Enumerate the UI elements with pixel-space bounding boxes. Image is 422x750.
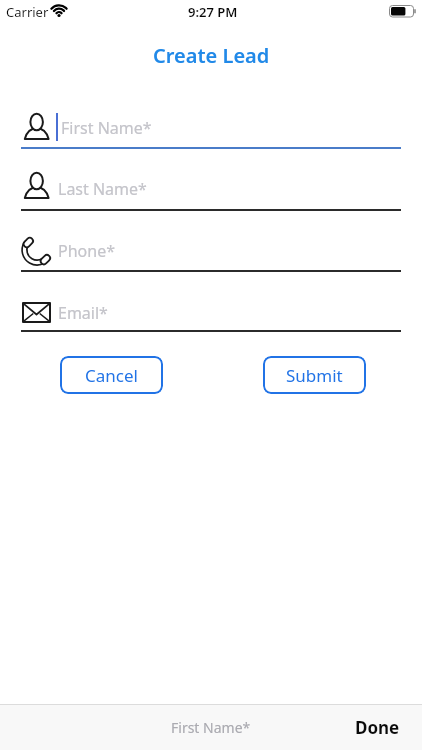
button[interactable]: Done [377, 716, 422, 739]
staticText: First Name* [171, 718, 251, 737]
staticText: Phone* [58, 240, 115, 262]
button[interactable]: Submit [263, 356, 366, 394]
staticText: Done [355, 716, 400, 739]
button[interactable]: Cancel [60, 356, 163, 394]
staticText: Last Name* [58, 178, 147, 200]
staticText: Carrier [6, 3, 49, 21]
staticText: Cancel [85, 364, 138, 387]
staticText: Submit [286, 364, 343, 387]
staticText: Email* [58, 302, 108, 324]
staticText: Create Lead [153, 42, 270, 69]
staticText: First Name* [61, 117, 152, 139]
staticText: 9:27 PM [188, 3, 238, 21]
